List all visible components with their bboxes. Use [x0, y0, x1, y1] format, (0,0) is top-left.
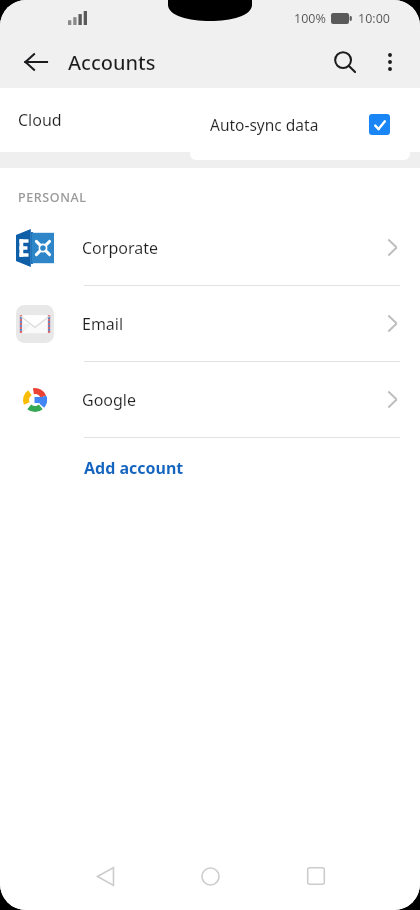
button[interactable]: Google: [0, 362, 420, 437]
button[interactable]: Back: [14, 40, 58, 84]
staticText: Corporate: [82, 237, 158, 259]
button[interactable]: Home: [158, 842, 263, 910]
staticText: 100%: [294, 10, 326, 27]
staticText: Email: [82, 313, 124, 335]
staticText: Add account: [84, 457, 184, 479]
button[interactable]: More options: [368, 40, 412, 84]
button[interactable]: Cloud: [0, 88, 420, 152]
button[interactable]: Email: [0, 286, 420, 361]
staticText: Cloud: [18, 109, 62, 131]
button[interactable]: Back: [52, 842, 158, 910]
staticText: Google: [82, 389, 137, 411]
button[interactable]: Recent apps: [263, 842, 368, 910]
button[interactable]: Auto-sync data: [190, 88, 410, 160]
button[interactable]: Search: [323, 40, 367, 84]
staticText: PERSONAL: [18, 189, 87, 206]
staticText: Accounts: [68, 49, 156, 76]
staticText: Auto-sync data: [210, 114, 319, 135]
button[interactable]: Add account: [0, 438, 420, 498]
staticText: 10:00: [358, 10, 390, 27]
button[interactable]: Corporate: [0, 210, 420, 285]
